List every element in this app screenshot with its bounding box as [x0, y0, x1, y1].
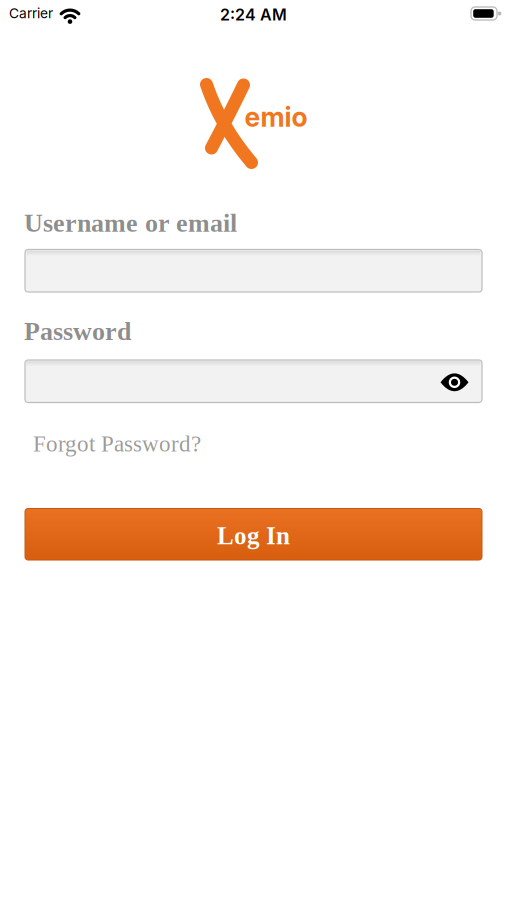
staticText: 2:24 AM	[220, 5, 287, 24]
button[interactable]: Forgot Password?	[33, 431, 201, 456]
button[interactable]: Log In	[25, 508, 482, 560]
staticText: Forgot Password?	[33, 431, 201, 456]
staticText: Log In	[217, 522, 290, 550]
staticText: Password	[24, 317, 131, 346]
staticText: Carrier	[9, 5, 53, 22]
button[interactable]: Show password	[434, 367, 474, 397]
staticText: emio	[244, 101, 307, 133]
staticText: Username or email	[24, 208, 237, 237]
